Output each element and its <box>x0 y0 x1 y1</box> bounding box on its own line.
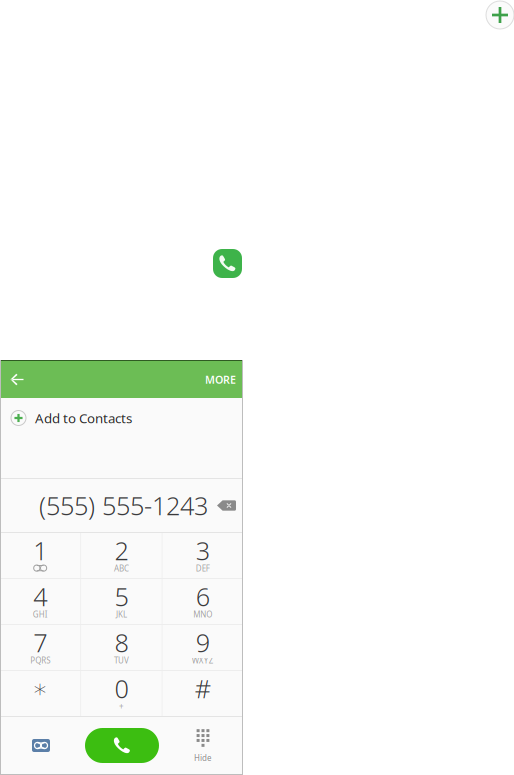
staticText: JKL <box>116 609 127 620</box>
button[interactable]: Back <box>0 361 34 398</box>
button[interactable]: 4 <box>0 579 80 624</box>
button[interactable]: 5 <box>81 579 162 624</box>
button[interactable]: 6 <box>163 579 243 624</box>
staticText: 5 <box>114 580 128 613</box>
staticText: 6 <box>196 580 210 613</box>
button[interactable]: 9 <box>163 625 243 670</box>
staticText: 8 <box>114 626 128 659</box>
button[interactable]: Add <box>486 1 514 29</box>
button[interactable]: Delete <box>217 479 236 532</box>
staticText: PQRS <box>30 655 50 666</box>
staticText: (555) 555-1243 <box>39 489 208 522</box>
staticText: 3 <box>196 534 210 567</box>
staticText: TUV <box>114 655 129 666</box>
staticText: DEF <box>196 563 210 574</box>
button[interactable]: # <box>163 671 243 716</box>
button[interactable]: ∗ <box>0 671 80 716</box>
staticText: 9 <box>196 626 210 659</box>
button[interactable]: 2 <box>81 533 162 578</box>
staticText: ∗ <box>32 674 48 703</box>
button[interactable]: Call <box>85 728 159 763</box>
button[interactable]: 7 <box>0 625 80 670</box>
button[interactable]: Add to Contacts <box>0 398 243 438</box>
staticText: 4 <box>33 580 47 613</box>
button[interactable]: 0 <box>81 671 162 716</box>
staticText: + <box>119 701 124 712</box>
staticText: 2 <box>114 534 128 567</box>
staticText: Add to Contacts <box>35 409 132 427</box>
button[interactable]: 8 <box>81 625 162 670</box>
staticText: 1 <box>33 534 47 567</box>
button[interactable]: Phone <box>213 249 242 278</box>
staticText: ABC <box>114 563 129 574</box>
staticText: Hide <box>194 752 212 763</box>
button[interactable]: 3 <box>163 533 243 578</box>
staticText: 0 <box>114 672 128 705</box>
staticText: 7 <box>33 626 47 659</box>
staticText: MNO <box>193 609 212 620</box>
staticText: MORE <box>205 372 236 387</box>
staticText: GHI <box>33 609 48 620</box>
button[interactable]: Voicemail <box>23 732 59 758</box>
staticText: WXYZ <box>192 655 214 666</box>
button[interactable]: MORE <box>195 361 243 398</box>
staticText: # <box>195 672 211 705</box>
button[interactable]: Hide keypad <box>184 727 222 763</box>
button[interactable]: 1 <box>0 533 80 578</box>
